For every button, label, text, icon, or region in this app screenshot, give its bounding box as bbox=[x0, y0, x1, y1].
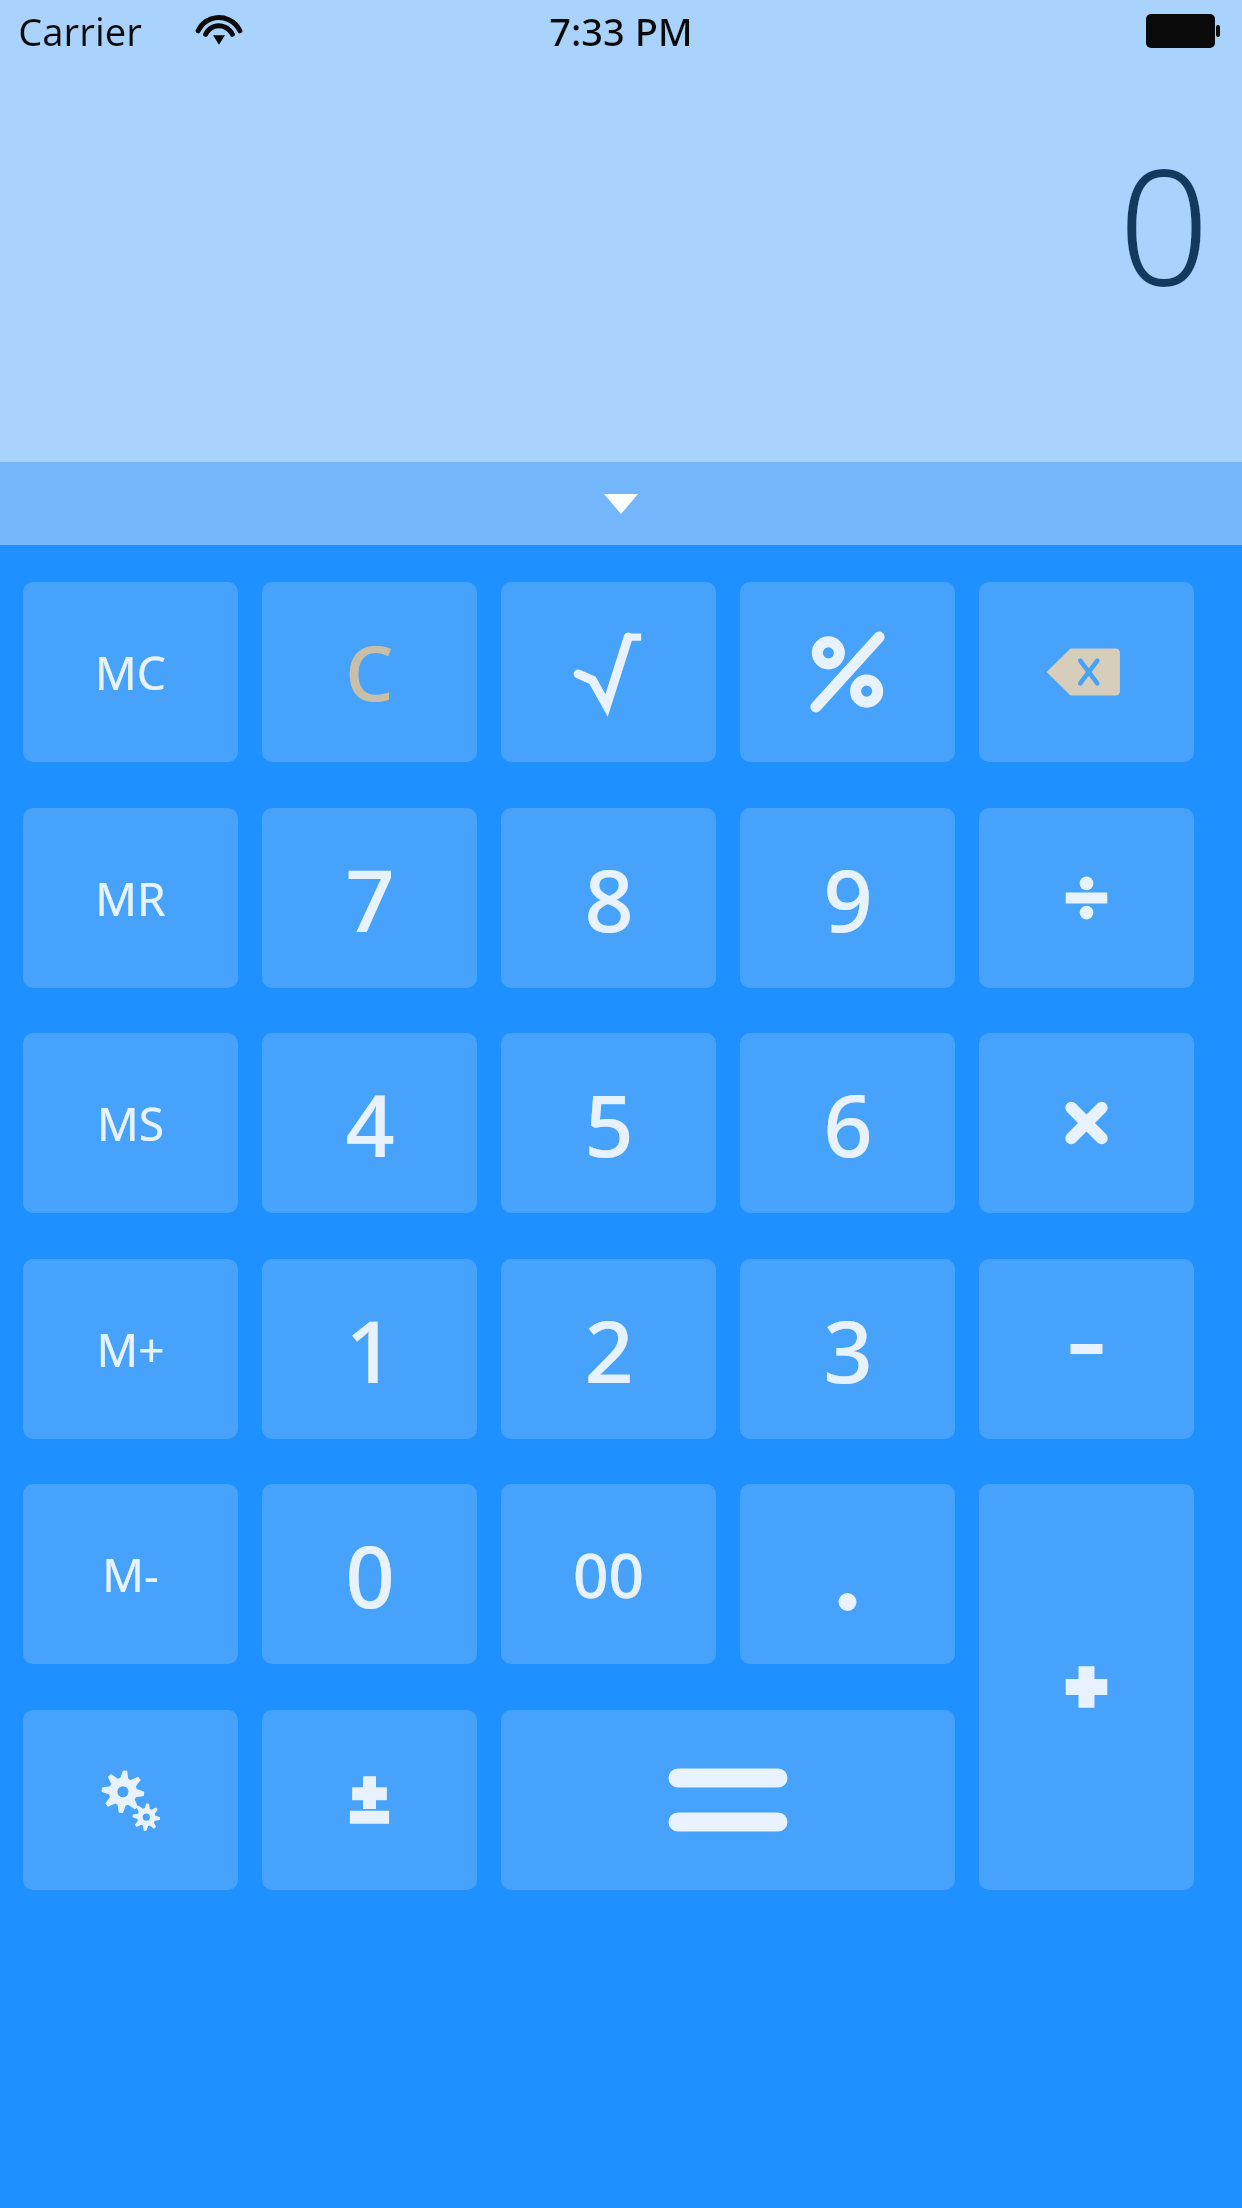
staticText: MC bbox=[95, 641, 166, 704]
staticText: 9 bbox=[823, 840, 873, 957]
button[interactable]: MC bbox=[23, 582, 238, 762]
staticText: 5 bbox=[584, 1065, 634, 1182]
staticText: 7:33 PM bbox=[549, 5, 693, 57]
staticText: C bbox=[345, 620, 394, 724]
button[interactable]: Settings bbox=[23, 1710, 238, 1890]
staticText: 2 bbox=[584, 1291, 634, 1408]
button[interactable]: 1 bbox=[262, 1259, 477, 1439]
button[interactable]: Minus bbox=[979, 1259, 1194, 1439]
staticText: MR bbox=[95, 867, 166, 930]
staticText: M- bbox=[102, 1543, 159, 1606]
staticText: 1 bbox=[345, 1291, 395, 1408]
staticText: M+ bbox=[96, 1318, 165, 1381]
button[interactable]: 0 bbox=[262, 1484, 477, 1664]
button[interactable]: Expand history bbox=[0, 462, 1242, 545]
staticText: 3 bbox=[823, 1291, 873, 1408]
button[interactable]: M- bbox=[23, 1484, 238, 1664]
staticText: 0 bbox=[1118, 114, 1210, 332]
button[interactable]: MS bbox=[23, 1033, 238, 1213]
button[interactable]: Backspace bbox=[979, 582, 1194, 762]
button[interactable]: Decimal point bbox=[740, 1484, 955, 1664]
staticText: 00 bbox=[573, 1532, 644, 1616]
button[interactable]: Plus minus bbox=[262, 1710, 477, 1890]
staticText: MS bbox=[97, 1092, 164, 1155]
staticText: Carrier bbox=[18, 5, 142, 57]
button[interactable]: 9 bbox=[740, 808, 955, 988]
button[interactable]: 7 bbox=[262, 808, 477, 988]
button[interactable]: M+ bbox=[23, 1259, 238, 1439]
staticText: 7 bbox=[345, 840, 395, 957]
button[interactable]: C bbox=[262, 582, 477, 762]
button[interactable]: 00 bbox=[501, 1484, 716, 1664]
button[interactable]: 3 bbox=[740, 1259, 955, 1439]
staticText: 0 bbox=[345, 1516, 395, 1633]
button[interactable]: Plus bbox=[979, 1484, 1194, 1890]
button[interactable]: 5 bbox=[501, 1033, 716, 1213]
staticText: 8 bbox=[584, 840, 634, 957]
button[interactable]: Divide bbox=[979, 808, 1194, 988]
button[interactable]: MR bbox=[23, 808, 238, 988]
staticText: 6 bbox=[823, 1065, 873, 1182]
button[interactable]: 2 bbox=[501, 1259, 716, 1439]
staticText: 4 bbox=[345, 1065, 395, 1182]
button[interactable]: Multiply bbox=[979, 1033, 1194, 1213]
button[interactable]: 6 bbox=[740, 1033, 955, 1213]
button[interactable]: 4 bbox=[262, 1033, 477, 1213]
button[interactable]: Equals bbox=[501, 1710, 955, 1890]
button[interactable]: 8 bbox=[501, 808, 716, 988]
button[interactable]: Square root bbox=[501, 582, 716, 762]
button[interactable]: Percent bbox=[740, 582, 955, 762]
